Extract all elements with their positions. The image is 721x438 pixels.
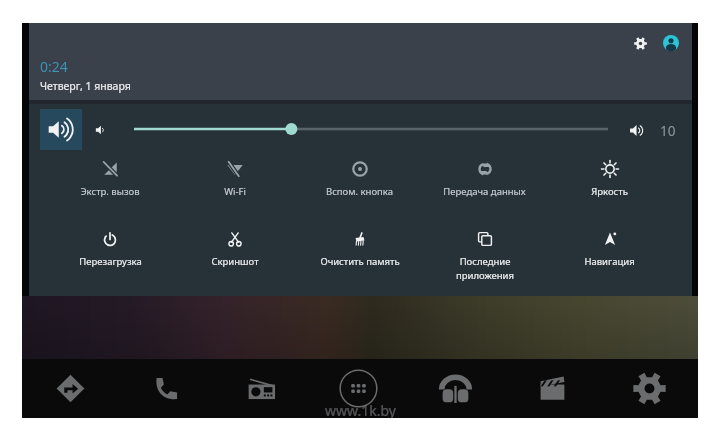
staticText: Последние приложения — [456, 255, 514, 281]
button[interactable]: Очистить память — [297, 231, 422, 283]
button[interactable]: Radio — [214, 359, 310, 418]
button[interactable]: Volume down — [89, 117, 115, 143]
button[interactable]: Wi-Fi — [172, 161, 297, 203]
staticText: Навигация — [584, 255, 635, 268]
staticText: 10 — [660, 122, 676, 140]
button[interactable]: Передача данных — [422, 161, 547, 203]
button[interactable]: Video — [504, 359, 601, 418]
button[interactable]: Навигация — [547, 231, 672, 283]
button[interactable]: Navigation — [22, 359, 118, 418]
staticText: Передача данных — [443, 185, 526, 198]
button[interactable]: Скриншот — [172, 231, 297, 283]
button[interactable]: Volume up — [624, 116, 652, 144]
staticText: 0:24 — [40, 57, 68, 76]
button[interactable]: Phone — [118, 359, 214, 418]
staticText: Вспом. кнопка — [326, 185, 393, 198]
button[interactable]: Экстр. вызов — [48, 161, 172, 203]
staticText: Четверг, 1 января — [40, 79, 131, 93]
button[interactable]: Settings — [601, 359, 698, 418]
button[interactable]: Яркость — [547, 161, 672, 203]
button[interactable]: Вспом. кнопка — [297, 161, 422, 203]
button[interactable]: Music — [407, 359, 504, 418]
button[interactable]: Volume slider — [134, 119, 608, 139]
button[interactable]: Ring mode — [40, 109, 82, 150]
staticText: Экстр. вызов — [80, 185, 140, 198]
button[interactable]: Settings — [626, 29, 654, 57]
staticText: Wi-Fi — [224, 185, 246, 198]
button[interactable]: Apps — [310, 359, 407, 418]
button[interactable]: Перезагрузка — [48, 231, 172, 283]
button[interactable]: Account — [657, 29, 685, 57]
staticText: Яркость — [591, 185, 628, 198]
staticText: Скриншот — [211, 255, 259, 268]
staticText: www.1k.by — [325, 401, 396, 420]
button[interactable]: Последние приложения — [422, 231, 547, 283]
staticText: Очистить память — [320, 255, 400, 268]
staticText: Перезагрузка — [79, 255, 142, 268]
